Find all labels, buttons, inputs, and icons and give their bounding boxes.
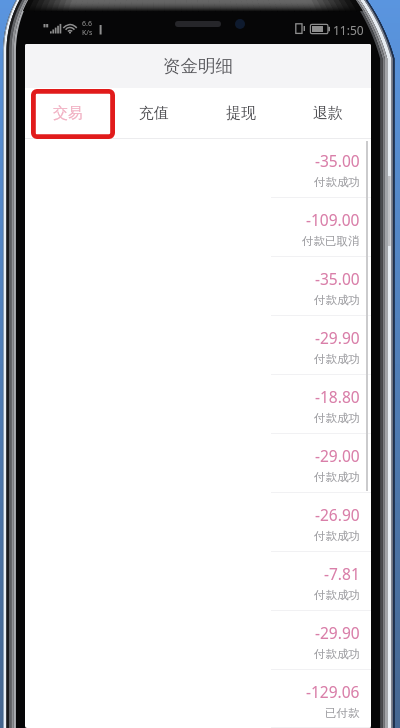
- staticText: 已付款: [325, 706, 360, 720]
- staticText: -29.90: [315, 327, 360, 348]
- staticText: -26.90: [315, 504, 360, 525]
- staticText: -29.00: [315, 445, 360, 466]
- button[interactable]: 充值: [111, 88, 197, 138]
- staticText: -35.00: [315, 150, 360, 171]
- button[interactable]: -109.00: [25, 198, 371, 257]
- button[interactable]: -26.90: [25, 493, 371, 552]
- staticText: 付款成功: [314, 352, 360, 366]
- staticText: 11:50: [333, 22, 364, 38]
- staticText: 退款: [313, 104, 343, 123]
- button[interactable]: -29.90: [25, 611, 371, 670]
- other: Highlight: [31, 89, 115, 139]
- staticText: 付款成功: [314, 647, 360, 661]
- button[interactable]: -29.00: [25, 434, 371, 493]
- staticText: 付款成功: [314, 529, 360, 543]
- button[interactable]: -129.06: [25, 670, 371, 728]
- staticText: 付款成功: [314, 175, 360, 189]
- button[interactable]: -35.00: [25, 139, 371, 198]
- staticText: 提现: [226, 104, 256, 123]
- button[interactable]: 提现: [197, 88, 284, 138]
- staticText: 付款已取消: [302, 234, 360, 248]
- staticText: -109.00: [306, 209, 360, 230]
- staticText: -129.06: [306, 681, 360, 702]
- button[interactable]: 交易: [25, 88, 111, 138]
- staticText: 付款成功: [314, 470, 360, 484]
- staticText: 付款成功: [314, 293, 360, 307]
- button[interactable]: 退款: [284, 88, 371, 138]
- button[interactable]: -29.90: [25, 316, 371, 375]
- staticText: 付款成功: [314, 411, 360, 425]
- staticText: 资金明细: [163, 55, 233, 77]
- staticText: -35.00: [315, 268, 360, 289]
- button[interactable]: -18.80: [25, 375, 371, 434]
- staticText: 充值: [139, 104, 169, 123]
- staticText: 交易: [53, 104, 83, 123]
- staticText: -18.80: [315, 386, 360, 407]
- staticText: -7.81: [324, 563, 360, 584]
- button[interactable]: -35.00: [25, 257, 371, 316]
- button[interactable]: -7.81: [25, 552, 371, 611]
- staticText: 6.6: [82, 19, 92, 29]
- staticText: K/s: [82, 28, 93, 38]
- staticText: -29.90: [315, 622, 360, 643]
- staticText: 付款成功: [314, 588, 360, 602]
